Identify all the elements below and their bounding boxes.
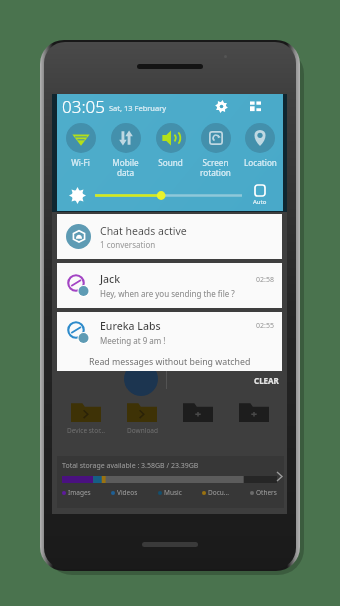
button[interactable]: Eureka Labs xyxy=(57,312,282,371)
staticText: Sound xyxy=(158,157,183,168)
staticText: CLEAR xyxy=(254,375,279,386)
button[interactable]: Edit quick settings xyxy=(249,100,262,113)
staticText: Music xyxy=(164,488,182,497)
button[interactable]: Chat heads active xyxy=(57,214,282,259)
button[interactable]: Mobile data xyxy=(103,118,148,178)
staticText: Device stor... xyxy=(67,426,105,435)
button[interactable]: CLEAR xyxy=(246,372,287,389)
staticText: Others xyxy=(256,488,277,497)
button[interactable]: Auto brightness xyxy=(249,185,270,206)
staticText: Wi-Fi xyxy=(71,157,90,168)
staticText: Auto xyxy=(253,198,267,206)
staticText: Videos xyxy=(117,488,138,497)
button[interactable]: Wi-Fi xyxy=(58,118,103,168)
staticText: Sat, 13 February xyxy=(109,103,167,113)
staticText: 1 conversation xyxy=(100,239,156,250)
staticText: Images xyxy=(68,488,91,497)
staticText: Mobile data xyxy=(112,157,139,178)
staticText: Docu... xyxy=(208,488,230,497)
button[interactable]: Jack xyxy=(57,263,282,308)
button[interactable]: Screen rotation xyxy=(193,118,238,178)
staticText: Screen rotation xyxy=(200,157,231,178)
staticText: 03:05 xyxy=(62,95,105,118)
staticText: Read messages without being watched xyxy=(89,356,251,368)
staticText: Chat heads active xyxy=(100,224,187,238)
staticText: 02:58 xyxy=(256,275,274,285)
staticText: Download xyxy=(127,426,158,435)
button[interactable]: Settings xyxy=(214,99,228,113)
button[interactable]: Download xyxy=(117,396,167,435)
staticText: Total storage available : 3.58GB / 23.39… xyxy=(62,461,199,471)
staticText: Meeting at 9 am ! xyxy=(100,335,166,346)
staticText: Hey, when are you sending the file ? xyxy=(100,288,235,299)
button[interactable]: Location xyxy=(238,118,282,168)
button[interactable]: Sound xyxy=(148,118,193,168)
button[interactable]: Device stor... xyxy=(61,396,111,435)
button[interactable] xyxy=(173,396,223,435)
staticText: Eureka Labs xyxy=(100,319,161,333)
staticText: Jack xyxy=(100,272,121,286)
staticText: Location xyxy=(244,157,277,168)
button[interactable] xyxy=(229,396,279,435)
button[interactable]: Total storage available : 3.58GB / 23.39… xyxy=(57,456,284,508)
staticText: 02:55 xyxy=(256,321,274,331)
